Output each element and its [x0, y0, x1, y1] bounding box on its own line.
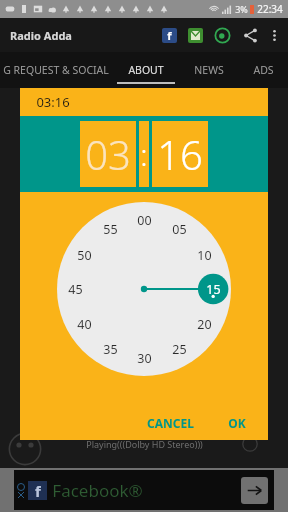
staticText: Facebook®	[52, 479, 143, 502]
staticText: 05	[172, 221, 187, 238]
staticText: ABOUT	[128, 63, 164, 77]
button[interactable]: G REQUEST & SOCIAL	[0, 52, 112, 88]
button[interactable]: Share	[242, 27, 259, 44]
staticText: OK	[228, 415, 246, 431]
staticText: 3%	[235, 3, 248, 15]
staticText: 55	[103, 221, 118, 238]
staticText: f	[35, 481, 41, 500]
button[interactable]: CANCEL	[139, 409, 202, 437]
staticText: 22:34	[257, 2, 283, 16]
button[interactable]: OK	[220, 409, 254, 437]
button[interactable]: Email	[188, 28, 203, 43]
button[interactable]: 16	[152, 121, 208, 187]
staticText: 00	[137, 212, 152, 229]
staticText: 03	[85, 127, 131, 181]
staticText: 45	[68, 281, 83, 298]
staticText: 10	[197, 247, 212, 264]
button[interactable]: NEWS	[180, 52, 238, 88]
staticText: Playing(((Dolby HD Stereo)))	[86, 438, 203, 450]
staticText: G REQUEST & SOCIAL	[3, 63, 109, 77]
button[interactable]: Facebook	[162, 28, 177, 43]
button[interactable]: ADS	[238, 52, 288, 88]
staticText: :	[140, 134, 148, 175]
button[interactable]: Open advertisement	[241, 477, 268, 504]
button[interactable]: More options	[266, 27, 283, 44]
staticText: 03:16	[36, 93, 70, 111]
staticText: 16	[157, 127, 203, 181]
staticText: NEWS	[194, 63, 224, 77]
staticText: 20	[197, 316, 212, 333]
staticText: ADS	[253, 63, 274, 77]
staticText: CANCEL	[147, 415, 194, 431]
staticText: 15	[206, 281, 221, 298]
staticText: 30	[137, 350, 152, 367]
button[interactable]: Minute dial	[57, 202, 231, 376]
button[interactable]: f	[14, 470, 274, 510]
staticText: Radio Adda	[10, 28, 72, 43]
staticText: 40	[77, 316, 92, 333]
staticText: f	[167, 28, 172, 43]
button[interactable]: ABOUT	[112, 52, 180, 88]
staticText: 35	[103, 341, 118, 358]
staticText: 50	[77, 247, 92, 264]
staticText: 25	[172, 341, 187, 358]
button[interactable]: 03	[80, 121, 136, 187]
button[interactable]: WhatsApp	[214, 27, 231, 44]
